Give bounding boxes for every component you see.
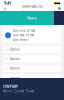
staticText: Line three [13,38,28,42]
staticText: Hero [27,15,37,21]
staticText: Option [10,76,20,80]
button[interactable]: Option [3,55,61,63]
staticText: 9:41 [4,0,11,6]
button[interactable]: Option [3,65,61,72]
staticText: example.com [22,3,43,14]
staticText: About Contact Privacy [3,89,34,93]
button[interactable]: Continue [3,84,61,91]
staticText: Option [10,48,20,51]
staticText: Line two of text [13,33,34,37]
staticText: Option [10,57,20,61]
staticText: ●●● [54,1,60,4]
button[interactable]: More [58,7,61,10]
staticText: Option [10,67,20,70]
button[interactable]: Back [3,6,7,11]
staticText: COMPANY [3,85,18,88]
staticText: Line one of text [13,29,35,32]
button[interactable]: Option [3,74,61,82]
staticText: ‹ [4,4,6,13]
button[interactable]: Option [3,46,61,53]
